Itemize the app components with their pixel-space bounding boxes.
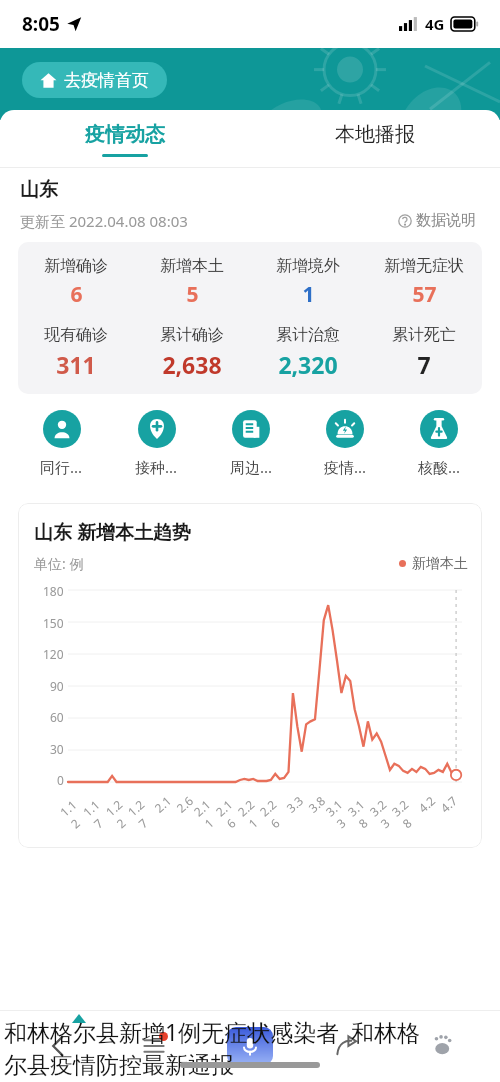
staticText: 去疫情首页 xyxy=(64,70,149,91)
staticText: 60 xyxy=(50,709,64,725)
staticText: 120 xyxy=(43,646,64,662)
staticText: 和林格尔县新增1例无症状感染者 和林格 xyxy=(4,1016,421,1047)
staticText: 1 xyxy=(302,280,315,309)
button[interactable]: 同行程查询 xyxy=(14,410,109,477)
staticText: 疫情动态 xyxy=(85,122,165,147)
staticText: 57 xyxy=(412,280,437,309)
button[interactable]: Voice search xyxy=(202,1010,298,1082)
staticText: 0 xyxy=(57,772,64,788)
button[interactable]: 核酸检测 xyxy=(392,410,486,477)
staticText: 30 xyxy=(50,741,64,757)
staticText: 8:05 xyxy=(22,11,60,37)
staticText: 1.22 xyxy=(102,793,140,831)
staticText: 周边... xyxy=(230,457,273,477)
staticText: 数据说明 xyxy=(416,211,476,230)
staticText: 3.23 xyxy=(366,793,404,831)
button[interactable]: Back xyxy=(10,1010,106,1082)
staticText: 4.7 xyxy=(437,792,460,816)
staticText: 2.1 xyxy=(151,792,174,816)
staticText: 新增无症状 xyxy=(384,256,464,276)
button[interactable]: Baidu xyxy=(394,1010,490,1082)
staticText: 7 xyxy=(417,349,431,380)
staticText: 3.3 xyxy=(283,792,306,816)
staticText: 2.21 xyxy=(234,793,272,831)
staticText: 3.8 xyxy=(305,792,328,816)
staticText: 5 xyxy=(186,280,199,309)
staticText: 更新至 2022.04.08 08:03 xyxy=(20,211,188,231)
staticText: 核酸... xyxy=(418,457,461,477)
staticText: 3.18 xyxy=(344,793,382,831)
staticText: 新增本土 xyxy=(412,555,468,573)
staticText: 3.13 xyxy=(322,793,360,831)
staticText: 同行... xyxy=(40,457,83,477)
button[interactable]: 数据说明 xyxy=(394,207,480,234)
button[interactable]: 本地播报 xyxy=(250,110,500,168)
staticText: 150 xyxy=(43,615,64,631)
staticText: 本地播报 xyxy=(335,122,415,147)
button[interactable]: Menu xyxy=(106,1010,202,1082)
staticText: 2.26 xyxy=(256,793,294,831)
staticText: 1.12 xyxy=(56,792,95,832)
button[interactable]: 疫情动态 xyxy=(0,110,250,168)
staticText: 2.16 xyxy=(212,793,250,831)
staticText: 新增确诊 xyxy=(44,256,108,276)
staticText: 山东 新增本土趋势 xyxy=(34,519,191,545)
staticText: 单位: 例 xyxy=(34,554,84,573)
staticText: 累计确诊 xyxy=(160,325,224,345)
button[interactable]: 周边疫情 xyxy=(204,410,298,477)
staticText: 6 xyxy=(70,280,83,309)
staticText: 1.17 xyxy=(79,792,118,832)
button[interactable]: 疫情播报 xyxy=(298,410,392,477)
staticText: 1.27 xyxy=(124,793,162,831)
staticText: 311 xyxy=(56,349,96,380)
staticText: 2.11 xyxy=(190,793,228,831)
staticText: 2.6 xyxy=(173,792,196,816)
staticText: 2,638 xyxy=(162,349,222,380)
staticText: 尔县疫情防控最新通报 xyxy=(4,1051,234,1080)
staticText: 3.28 xyxy=(388,793,426,831)
button[interactable]: 去疫情首页 xyxy=(22,62,167,98)
staticText: 4.2 xyxy=(415,792,438,816)
staticText: 2,320 xyxy=(278,349,338,380)
button[interactable]: 疫苗接种 xyxy=(109,410,204,477)
staticText: 新增境外 xyxy=(276,256,340,276)
staticText: 180 xyxy=(43,583,64,599)
staticText: 疫情... xyxy=(324,457,367,477)
button[interactable]: Share xyxy=(298,1010,394,1082)
staticText: 90 xyxy=(50,678,64,694)
staticText: 现有确诊 xyxy=(44,325,108,345)
staticText: 累计治愈 xyxy=(276,325,340,345)
staticText: 接种... xyxy=(135,457,178,477)
staticText: 累计死亡 xyxy=(392,325,456,345)
staticText: 山东 xyxy=(20,178,58,202)
staticText: 新增本土 xyxy=(160,256,224,276)
staticText: 4G xyxy=(425,14,445,34)
